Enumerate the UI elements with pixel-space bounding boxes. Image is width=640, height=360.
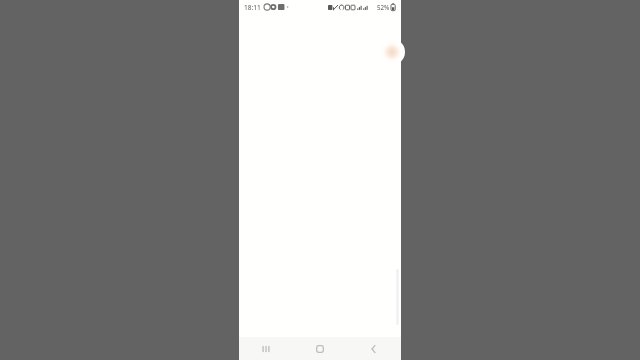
staticText: 52% (377, 3, 390, 11)
button[interactable]: Home (293, 337, 347, 360)
button[interactable]: Recent apps (239, 337, 293, 360)
staticText: 18:11 (244, 3, 261, 12)
button[interactable]: Back (347, 337, 401, 360)
